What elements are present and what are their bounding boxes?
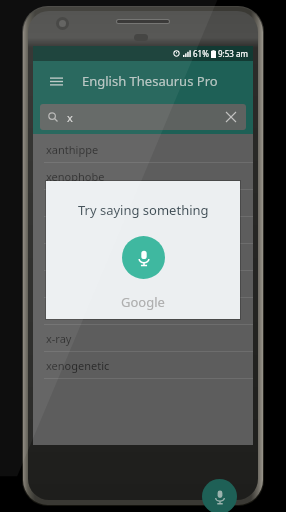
button[interactable]: xanthippe — [33, 136, 253, 163]
button[interactable]: Clear search — [220, 106, 242, 128]
staticText: English Thesaurus Pro — [82, 72, 218, 90]
staticText: xenophobe — [46, 169, 105, 184]
staticText: 9:53 am — [218, 48, 248, 59]
button[interactable]: Speak now — [122, 236, 165, 279]
staticText: x — [67, 110, 73, 125]
button[interactable]: xerography — [33, 271, 253, 298]
button[interactable]: Open navigation drawer — [44, 69, 68, 93]
button[interactable]: xeric — [33, 244, 253, 271]
button[interactable]: x-axis — [33, 190, 253, 217]
button[interactable]: xenophobe — [33, 163, 253, 190]
button[interactable]: xebec — [33, 217, 253, 244]
button[interactable]: x-ray — [33, 325, 253, 352]
staticText: 61% — [193, 48, 209, 59]
staticText: Try saying something — [78, 201, 209, 219]
button[interactable]: xenogenetic — [33, 352, 253, 379]
staticText: xanthippe — [46, 142, 99, 157]
staticText: x-ray — [46, 331, 72, 346]
button[interactable]: x — [40, 104, 246, 130]
button[interactable]: x-rated — [33, 298, 253, 325]
staticText: xenogenetic — [46, 358, 110, 373]
button[interactable]: Voice search — [202, 479, 237, 512]
staticText: Google — [121, 293, 165, 311]
